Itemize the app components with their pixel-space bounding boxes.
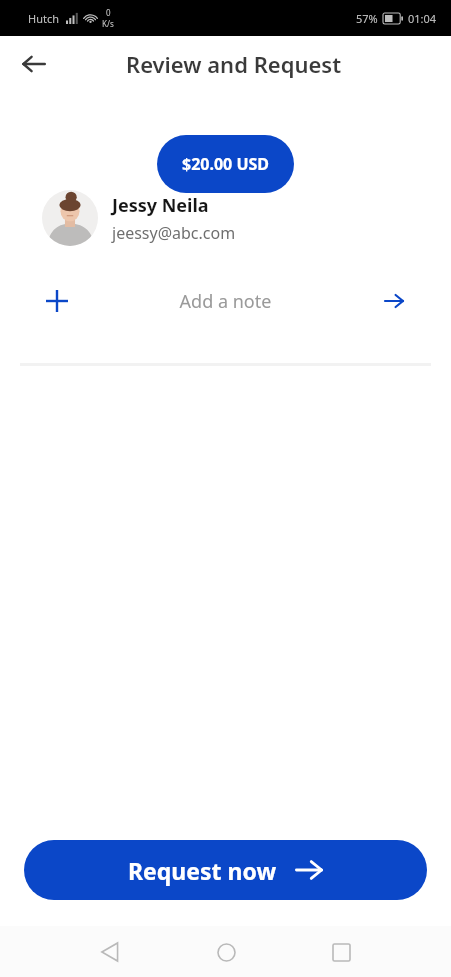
button[interactable]: Home [204,930,248,974]
button[interactable]: Jessy Neila [20,190,431,246]
staticText: Hutch [28,11,59,26]
button[interactable]: $20.00 USD [157,135,294,193]
staticText: $20.00 USD [182,153,270,175]
staticText: Add a note [72,289,379,314]
button[interactable]: Back [14,44,54,84]
staticText: 57% [356,11,378,26]
button[interactable]: Recent apps [319,930,363,974]
staticText: jeessy@abc.com [112,222,236,244]
button[interactable]: Request now [24,840,427,900]
staticText: Jessy Neila [112,193,209,218]
staticText: 01:04 [408,11,437,26]
staticText: Request now [128,855,277,886]
staticText: K/s [102,18,114,29]
button[interactable]: Back [88,930,132,974]
staticText: 0 [106,7,111,18]
button[interactable]: Add a note [20,273,431,329]
staticText: Review and Request [126,49,342,79]
